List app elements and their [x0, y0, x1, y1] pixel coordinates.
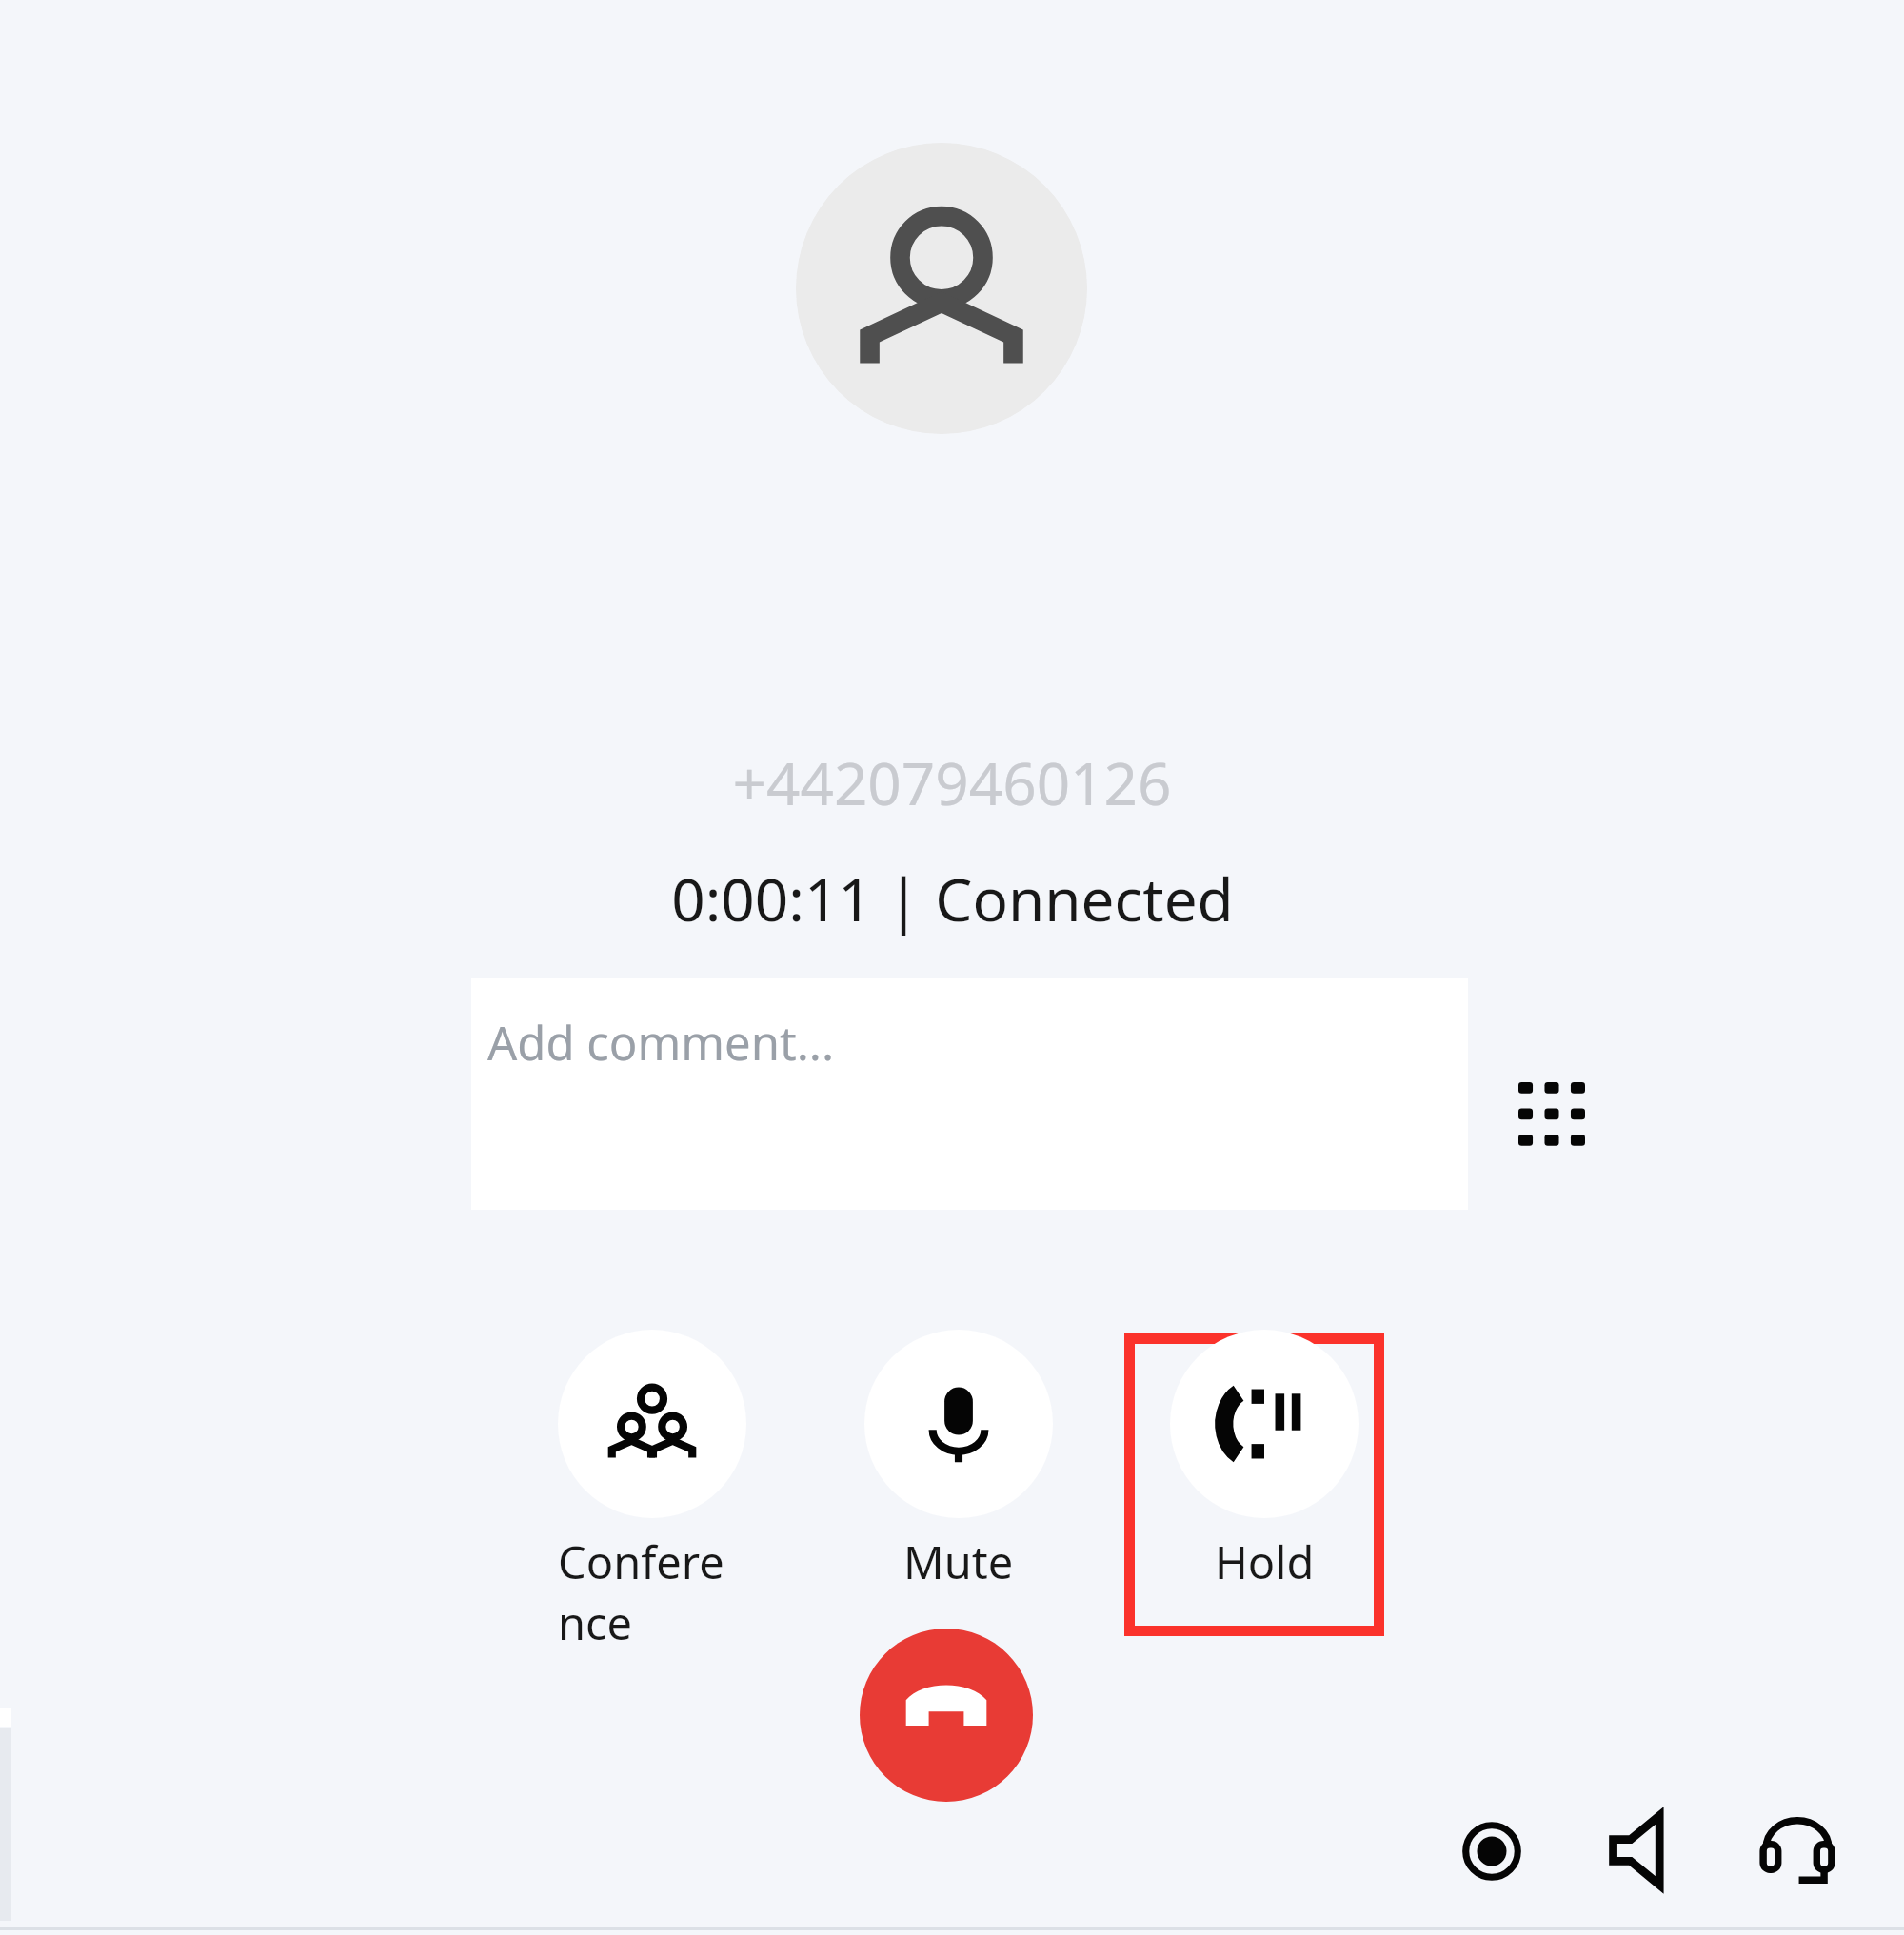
staticText: +442079460126 — [732, 742, 1172, 822]
staticText: Hold — [1215, 1531, 1315, 1592]
button[interactable]: End call — [860, 1629, 1033, 1802]
staticText: Add comment... — [487, 1011, 835, 1075]
button[interactable]: Hold — [1170, 1330, 1359, 1592]
button[interactable]: Conference — [558, 1330, 746, 1653]
button[interactable]: Keypad — [1502, 1066, 1601, 1165]
staticText: Conference — [558, 1531, 746, 1653]
button[interactable]: Speaker — [1597, 1803, 1693, 1898]
staticText: 0:00:11 | Connected — [671, 859, 1234, 938]
button[interactable]: Add comment... — [471, 978, 1468, 1210]
staticText: Mute — [903, 1531, 1014, 1592]
button[interactable]: Mute — [864, 1330, 1053, 1592]
button[interactable]: Headset — [1750, 1803, 1845, 1898]
button[interactable] — [1124, 1333, 1384, 1636]
button[interactable]: Record — [1447, 1807, 1537, 1896]
